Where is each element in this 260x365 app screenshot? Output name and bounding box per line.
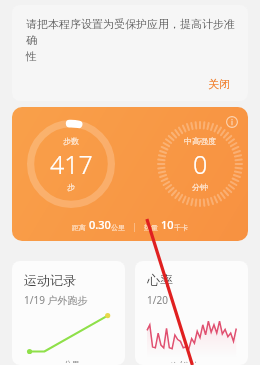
staticText: 步 — [67, 182, 75, 192]
staticText: 步数 — [63, 136, 79, 146]
staticText: 公里 — [111, 223, 125, 232]
staticText: 0.30 — [89, 217, 111, 232]
staticText: 次/分钟 — [171, 359, 198, 363]
staticText: 1/20 — [147, 293, 168, 307]
staticText: 请把本程序设置为受保护应用，提高计步准确 性 — [26, 17, 236, 63]
button[interactable]: 心率 — [135, 261, 248, 365]
staticText: 417 — [50, 147, 93, 181]
staticText: 0 — [193, 147, 208, 181]
button[interactable]: 步数 — [12, 107, 248, 241]
button[interactable]: 请把本程序设置为受保护应用，提高计步准确 性 — [12, 5, 248, 101]
button[interactable]: 关闭 — [202, 75, 236, 93]
staticText: 中高强度 — [184, 136, 216, 146]
button[interactable]: Information — [224, 114, 240, 130]
staticText: 运动记录 — [24, 272, 76, 288]
staticText: 距离 — [72, 223, 86, 232]
staticText: 公里 — [64, 359, 80, 363]
staticText: 心率 — [147, 272, 173, 288]
staticText: 分钟 — [192, 182, 208, 192]
staticText: | — [132, 220, 137, 232]
staticText: 1/19 户外跑步 — [24, 293, 88, 307]
button[interactable]: 运动记录 — [12, 261, 125, 365]
staticText: 千卡 — [174, 223, 188, 232]
staticText: 关闭 — [208, 77, 230, 91]
staticText: 热量 — [144, 223, 158, 232]
staticText: 10 — [161, 217, 174, 232]
